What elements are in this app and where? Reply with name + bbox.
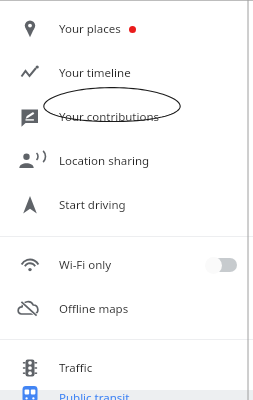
button[interactable]: Your contributions (0, 95, 253, 139)
staticText: Location sharing (59, 153, 150, 169)
staticText: Start driving (59, 197, 126, 213)
staticText: Your timeline (59, 65, 131, 81)
button[interactable]: Start driving (0, 183, 253, 227)
staticText: Offline maps (59, 301, 129, 317)
button[interactable]: Wi-Fi only toggle (205, 256, 239, 274)
staticText: Wi-Fi only (59, 257, 112, 273)
button[interactable]: Your timeline (0, 51, 253, 95)
button[interactable]: Offline maps (0, 287, 253, 331)
button[interactable]: Location sharing (0, 139, 253, 183)
button[interactable]: Wi-Fi only (0, 243, 253, 287)
button[interactable]: Public transit (0, 390, 253, 400)
button[interactable]: Your places (0, 7, 253, 51)
button[interactable]: Traffic (0, 346, 253, 390)
staticText: Your places (59, 21, 121, 37)
staticText: Traffic (59, 360, 93, 376)
staticText: Your contributions (59, 109, 160, 125)
staticText: Public transit (59, 390, 130, 400)
